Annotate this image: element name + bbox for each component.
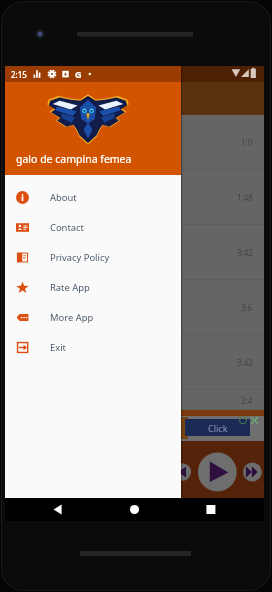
staticText: 2:4: [241, 395, 253, 406]
button[interactable]: About: [5, 182, 181, 212]
staticText: About: [50, 191, 77, 204]
staticText: Rate App: [50, 281, 90, 294]
button[interactable]: 1:0: [5, 115, 264, 170]
staticText: 3:42: [237, 247, 253, 258]
button[interactable]: 2:4: [5, 390, 264, 410]
staticText: Exit: [50, 341, 67, 354]
staticText: Click: [208, 422, 228, 434]
button[interactable]: 3:6: [5, 280, 264, 335]
button[interactable]: Click: [185, 419, 250, 436]
staticText: 1:0: [241, 137, 253, 148]
other: System navigation: [5, 498, 264, 521]
staticText: More App: [50, 311, 94, 324]
other: Close ad: [238, 416, 262, 425]
button[interactable]: 3:42: [5, 225, 264, 280]
button[interactable]: 3:42: [5, 335, 264, 390]
staticText: 3:42: [237, 357, 253, 368]
button[interactable]: Privacy Policy: [5, 242, 181, 272]
staticText: Privacy Policy: [50, 251, 110, 264]
button[interactable]: Rate App: [5, 272, 181, 302]
button[interactable]: More App: [5, 302, 181, 332]
staticText: 2:15: [11, 69, 27, 80]
button[interactable]: Contact: [5, 212, 181, 242]
button[interactable]: 1:48: [5, 170, 264, 225]
staticText: 3:6: [241, 302, 253, 313]
staticText: galo de campina femea: [16, 152, 132, 166]
staticText: Contact: [50, 221, 84, 234]
staticText: 1:48: [237, 192, 253, 203]
staticText: G: [75, 68, 82, 80]
button[interactable]: Exit: [5, 332, 181, 362]
